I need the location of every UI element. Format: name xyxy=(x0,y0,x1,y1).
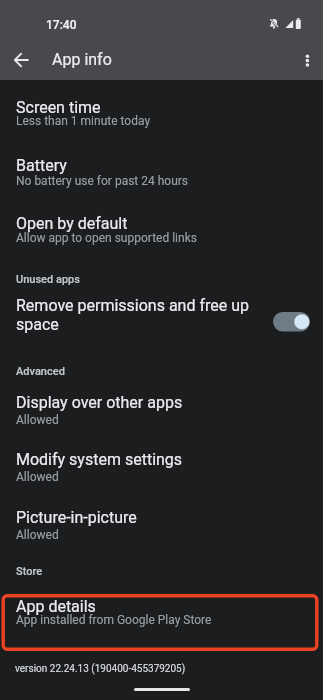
staticText: Display over other apps xyxy=(16,393,183,412)
staticText: Allowed xyxy=(16,413,59,427)
staticText: Allow app to open supported links xyxy=(16,231,197,245)
staticText: Screen time xyxy=(16,98,101,117)
staticText: Picture-in-picture xyxy=(16,508,137,527)
button[interactable]: Battery xyxy=(0,146,323,204)
button[interactable]: Open by default xyxy=(0,204,323,262)
staticText: Allowed xyxy=(16,528,59,542)
button[interactable]: Screen time xyxy=(0,86,323,146)
staticText: App details xyxy=(16,597,96,616)
staticText: App info xyxy=(52,50,112,69)
button[interactable]: Remove permissions and free up space xyxy=(0,284,323,342)
staticText: Less than 1 minute today xyxy=(16,114,151,128)
button[interactable]: Display over other apps xyxy=(0,380,323,438)
button[interactable] xyxy=(300,52,315,68)
staticText: Unused apps xyxy=(16,273,80,286)
staticText: 17:40 xyxy=(46,18,77,32)
staticText: No battery use for past 24 hours xyxy=(16,174,189,188)
button[interactable]: App details xyxy=(0,586,323,652)
button[interactable] xyxy=(13,52,29,68)
staticText: version 22.24.13 (190400-455379205) xyxy=(15,663,186,675)
button[interactable]: Modify system settings xyxy=(0,438,323,496)
staticText: Battery xyxy=(16,156,67,175)
staticText: Remove permissions and free up space xyxy=(16,296,249,334)
staticText: Modify system settings xyxy=(16,450,183,469)
staticText: Store xyxy=(16,565,43,578)
staticText: App installed from Google Play Store xyxy=(16,613,212,627)
button[interactable]: Picture-in-picture xyxy=(0,496,323,553)
staticText: Open by default xyxy=(16,214,128,233)
staticText: Advanced xyxy=(16,365,65,378)
staticText: Allowed xyxy=(16,470,59,484)
